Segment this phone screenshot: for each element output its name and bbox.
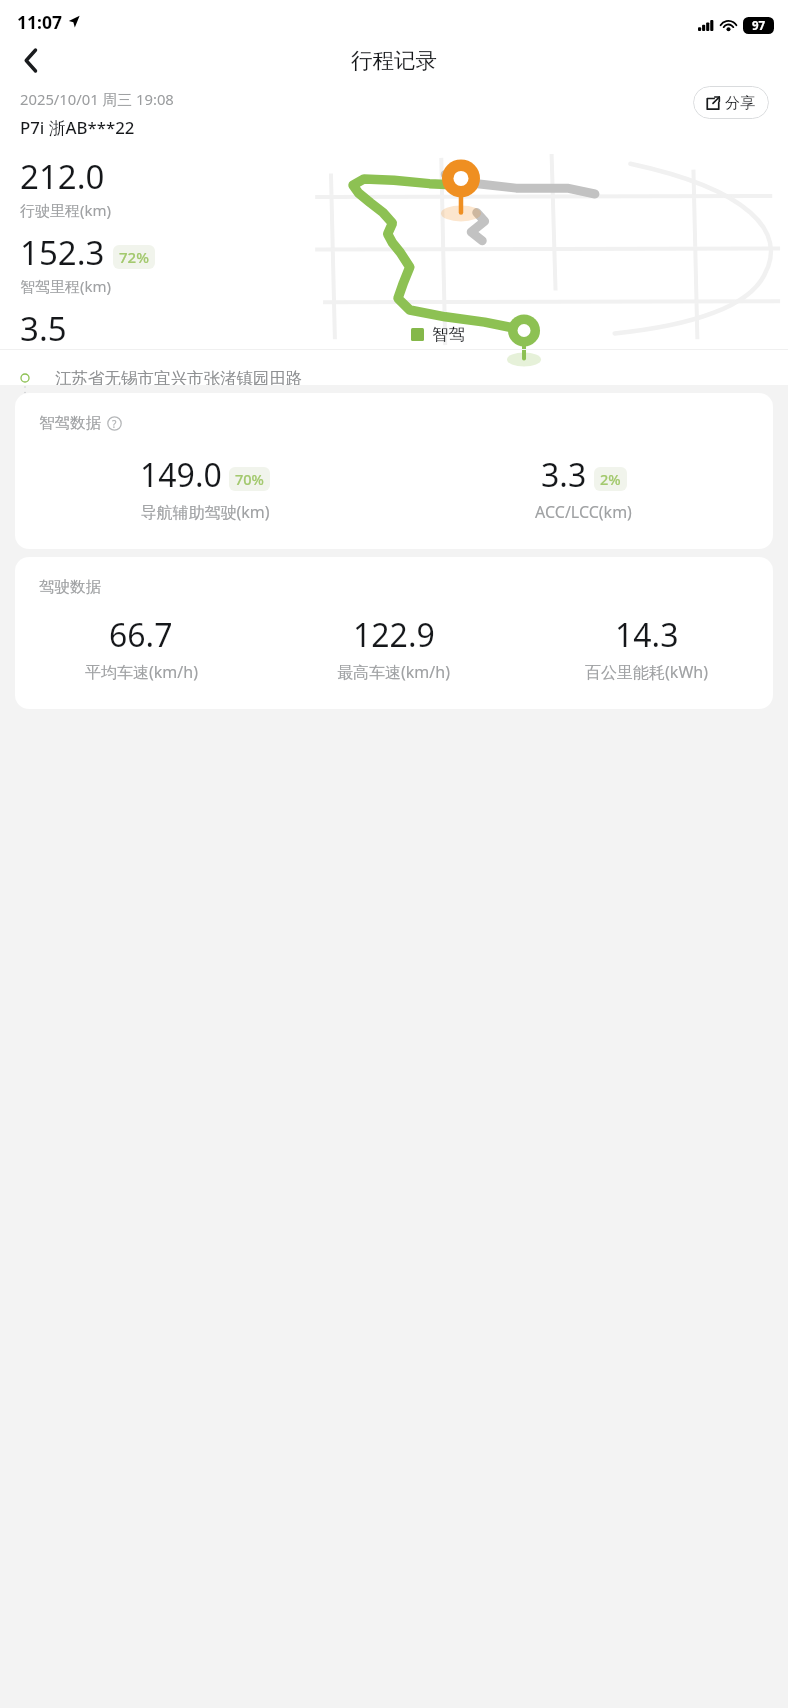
staticText: 百公里能耗(kWh) (585, 661, 708, 683)
staticText: 2025/10/01 周三 19:08 (20, 89, 174, 109)
staticText: ACC/LCC(km) (535, 501, 632, 523)
staticText: 驾驶数据 (39, 577, 101, 597)
button[interactable]: 智驾数据说明 (106, 415, 123, 432)
staticText: 智驾里程(km) (20, 276, 112, 296)
staticText: 14.3 (615, 613, 679, 657)
staticText: 平均车速(km/h) (85, 661, 198, 683)
staticText: 66.7 (109, 613, 173, 657)
staticText: 3.5 (20, 306, 67, 349)
staticText: 72% (119, 247, 149, 267)
staticText: 智驾数据 (39, 413, 101, 433)
staticText: 70% (235, 469, 264, 489)
staticText: 97 (752, 18, 766, 34)
staticText: 智驾 (432, 324, 465, 345)
staticText: 122.9 (353, 613, 435, 657)
staticText: 11:07 (17, 10, 62, 34)
staticText: 分享 (725, 93, 756, 112)
staticText: 149.0 (140, 453, 222, 497)
staticText: 最高车速(km/h) (337, 661, 450, 683)
staticText: 3.3 (541, 453, 587, 497)
staticText: 行驶里程(km) (20, 200, 112, 220)
staticText: 行程记录 (351, 47, 437, 74)
button[interactable]: 分享 (693, 86, 769, 119)
button[interactable]: Back (7, 36, 55, 84)
staticText: 152.3 (20, 230, 105, 275)
staticText: 212.0 (20, 154, 105, 199)
staticText: ? (112, 417, 117, 431)
staticText: P7i 浙AB***22 (20, 116, 135, 139)
staticText: 江苏省无锡市宜兴市张渚镇园田路 (55, 368, 303, 385)
staticText: 导航辅助驾驶(km) (140, 501, 270, 523)
staticText: 2% (600, 469, 621, 489)
